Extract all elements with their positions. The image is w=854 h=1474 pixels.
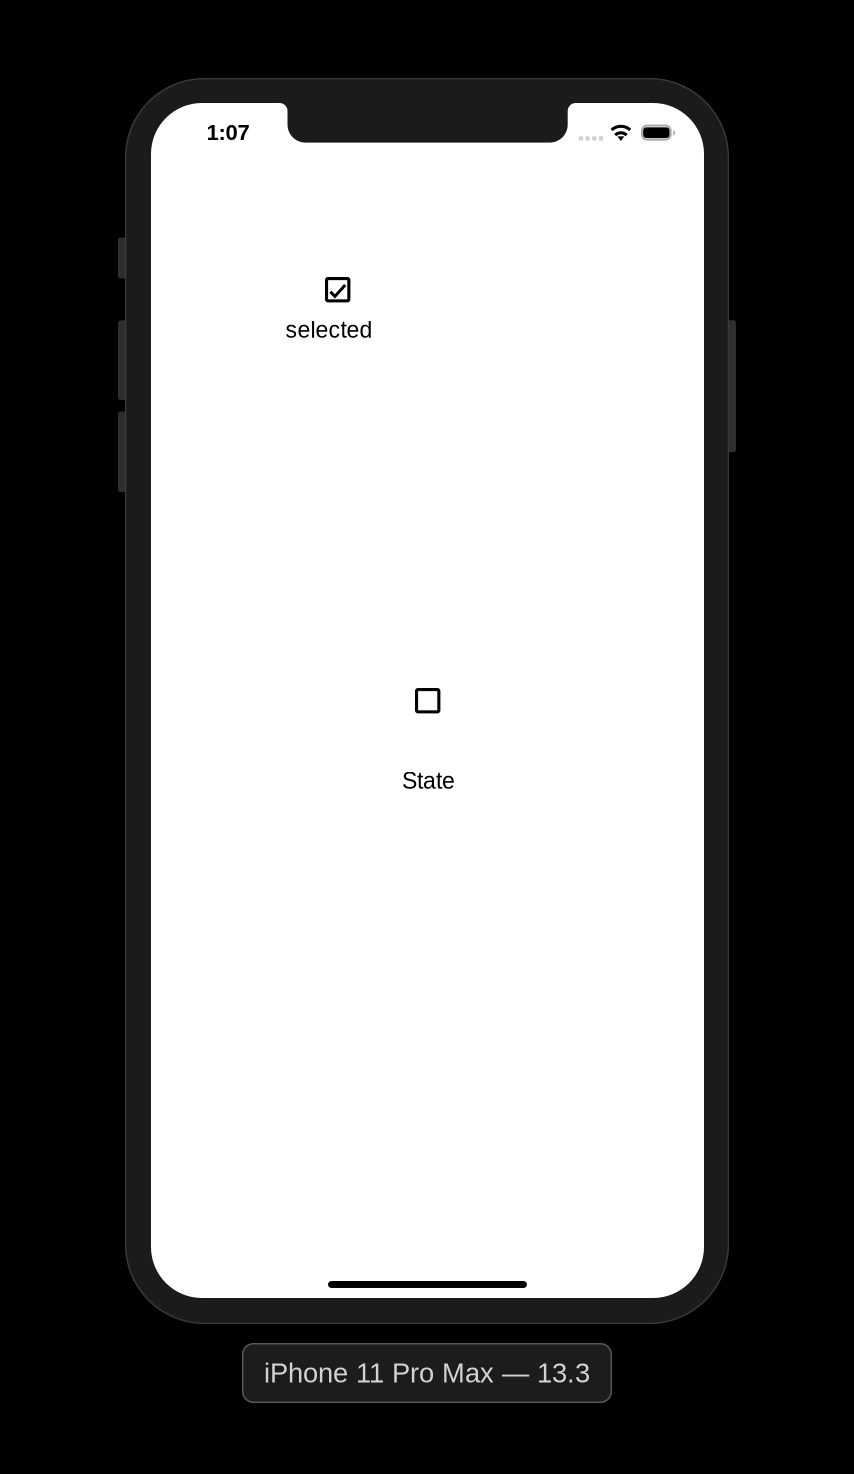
staticText: 1:07: [206, 120, 249, 145]
staticText: iPhone 11 Pro Max — 13.3: [264, 1358, 590, 1388]
button[interactable]: iPhone 11 Pro Max — 13.3: [242, 1343, 612, 1403]
staticText: State: [402, 768, 455, 794]
button[interactable]: State: [402, 688, 458, 806]
button[interactable]: selected: [285, 277, 375, 343]
staticText: selected: [285, 317, 372, 343]
